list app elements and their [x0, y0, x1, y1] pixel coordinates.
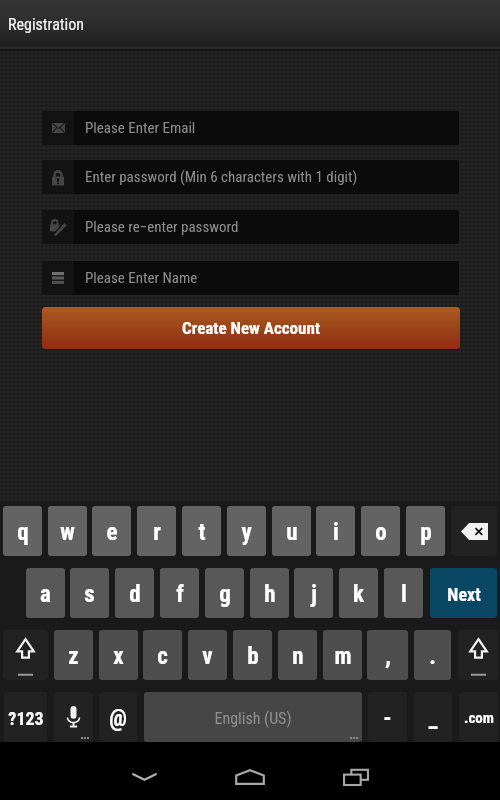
button[interactable]: i	[316, 506, 355, 556]
staticText: w	[60, 519, 75, 546]
button[interactable]: Next	[430, 568, 497, 618]
staticText: .	[429, 643, 436, 670]
staticText: j	[311, 581, 317, 608]
button[interactable]: Backspace	[451, 506, 497, 556]
staticText: Enter password (Min 6 characters with 1 …	[85, 168, 358, 186]
button[interactable]: ,	[367, 630, 408, 680]
button[interactable]: g	[205, 568, 244, 618]
button[interactable]: e	[92, 506, 131, 556]
staticText: u	[286, 519, 298, 546]
staticText: ?123	[8, 708, 44, 729]
staticText: b	[247, 643, 259, 670]
staticText: g	[219, 581, 231, 608]
staticText: a	[40, 581, 51, 608]
staticText: .com	[464, 709, 494, 727]
button[interactable]: n	[278, 630, 317, 680]
other: Backspace	[461, 523, 488, 540]
button[interactable]: q	[3, 506, 42, 556]
button[interactable]: m	[323, 630, 362, 680]
button[interactable]: Create New Account	[42, 307, 460, 349]
button[interactable]: x	[99, 630, 138, 680]
staticText: k	[353, 581, 364, 608]
button[interactable]: v	[188, 630, 227, 680]
button[interactable]: p	[406, 506, 445, 556]
button[interactable]: -	[368, 692, 407, 742]
button[interactable]: s	[70, 568, 109, 618]
staticText: -	[383, 705, 392, 732]
button[interactable]: Hide keyboard	[104, 748, 184, 800]
staticText: n	[292, 643, 304, 670]
button[interactable]: Please re−enter password	[42, 210, 459, 244]
button[interactable]: _	[414, 692, 452, 742]
button[interactable]: h	[250, 568, 289, 618]
staticText: d	[129, 581, 141, 608]
staticText: Registration	[8, 15, 84, 34]
staticText: r	[153, 519, 161, 546]
button[interactable]: Home	[210, 748, 290, 800]
button[interactable]: u	[272, 506, 311, 556]
staticText: l	[401, 581, 407, 608]
staticText: t	[198, 519, 206, 546]
staticText: c	[157, 643, 168, 670]
staticText: Create New Account	[182, 318, 320, 338]
staticText: z	[68, 643, 79, 670]
staticText: h	[264, 581, 276, 608]
staticText: i	[333, 519, 339, 546]
button[interactable]: Enter password (Min 6 characters with 1 …	[42, 160, 459, 194]
button[interactable]: r	[137, 506, 176, 556]
staticText: x	[113, 643, 124, 670]
staticText: ,	[385, 643, 391, 670]
staticText: o	[375, 519, 387, 546]
staticText: m	[334, 643, 352, 670]
button[interactable]: Please Enter Name	[42, 261, 459, 295]
staticText: p	[420, 519, 432, 546]
button[interactable]: y	[227, 506, 266, 556]
button[interactable]: Shift	[3, 630, 48, 680]
staticText: s	[84, 581, 95, 608]
button[interactable]: ?123	[4, 692, 47, 742]
button[interactable]: k	[339, 568, 378, 618]
button[interactable]: t	[182, 506, 221, 556]
button[interactable]: z	[54, 630, 93, 680]
button[interactable]: f	[160, 568, 199, 618]
staticText: Please re−enter password	[85, 218, 239, 236]
other: Shift	[16, 633, 35, 677]
staticText: f	[176, 581, 184, 608]
button[interactable]: a	[26, 568, 65, 618]
button[interactable]: Please Enter Email	[42, 111, 459, 145]
staticText: y	[241, 519, 252, 546]
button[interactable]: Voice input	[54, 692, 93, 742]
button[interactable]: Shift	[458, 630, 498, 680]
other: Voice input	[66, 706, 81, 728]
button[interactable]: l	[384, 568, 423, 618]
button[interactable]: .com	[459, 692, 498, 742]
button[interactable]: b	[233, 630, 272, 680]
button[interactable]: o	[361, 506, 400, 556]
staticText: q	[17, 519, 29, 546]
other: Shift	[469, 633, 488, 677]
staticText: Next	[447, 584, 481, 605]
button[interactable]: j	[294, 568, 333, 618]
button[interactable]: .	[414, 630, 451, 680]
staticText: Please Enter Name	[85, 269, 198, 287]
staticText: Please Enter Email	[85, 119, 196, 137]
button[interactable]: d	[115, 568, 154, 618]
button[interactable]: @	[99, 692, 137, 742]
button[interactable]: w	[48, 506, 87, 556]
button[interactable]: English (US)	[144, 692, 362, 742]
staticText: _	[428, 705, 438, 732]
staticText: English (US)	[214, 709, 292, 728]
button[interactable]: c	[143, 630, 182, 680]
staticText: @	[109, 705, 127, 732]
staticText: e	[106, 519, 118, 546]
button[interactable]: Recent apps	[316, 748, 396, 800]
staticText: v	[202, 643, 213, 670]
